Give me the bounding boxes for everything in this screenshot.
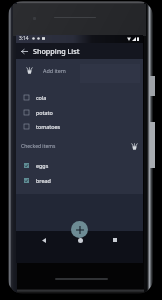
button[interactable]: Back — [16, 43, 33, 59]
button[interactable]: cola — [16, 90, 143, 104]
staticText: 3:14 — [19, 35, 29, 42]
button[interactable]: potato — [16, 105, 143, 119]
staticText: Checked items — [21, 143, 56, 150]
button[interactable]: bread — [16, 173, 143, 187]
button[interactable]: tomatoes — [16, 119, 143, 133]
staticText: eggs — [36, 162, 49, 169]
button[interactable]: Home — [72, 232, 88, 248]
button[interactable]: Add item — [16, 59, 143, 82]
staticText: tomatoes — [36, 123, 61, 130]
staticText: cola — [36, 94, 47, 101]
staticText: Shopping List — [33, 46, 80, 56]
button[interactable]: Add item — [71, 221, 88, 238]
staticText: Add item — [43, 67, 66, 74]
button[interactable]: Recent apps — [107, 232, 123, 248]
staticText: potato — [36, 109, 53, 116]
button[interactable]: eggs — [16, 158, 143, 172]
staticText: bread — [36, 177, 51, 184]
button[interactable]: Back — [36, 232, 52, 248]
button[interactable]: Delete checked items — [128, 140, 141, 153]
